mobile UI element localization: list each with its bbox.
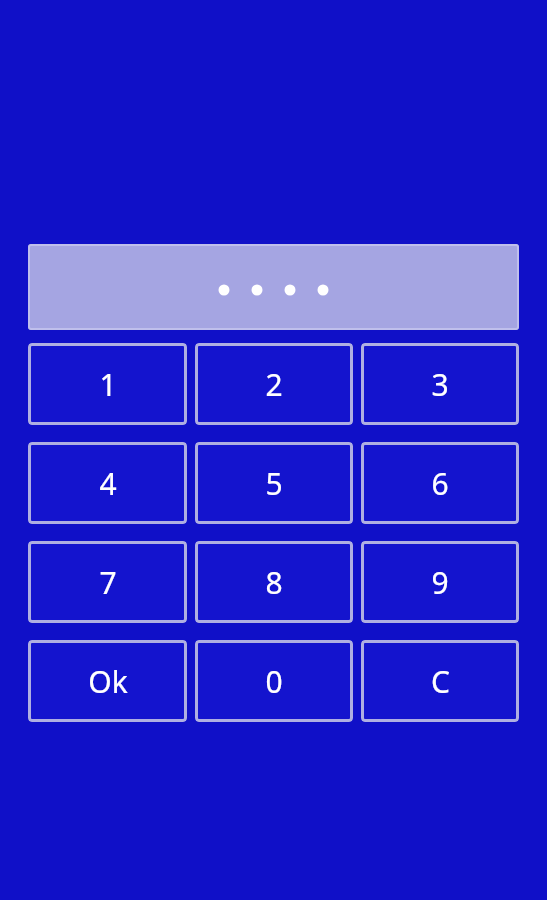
button[interactable]: 8	[195, 541, 353, 623]
staticText: C	[431, 661, 450, 702]
staticText: 0	[265, 661, 283, 702]
staticText: 3	[431, 364, 449, 405]
button[interactable]: Ok	[28, 640, 187, 722]
button[interactable]: 5	[195, 442, 353, 524]
button[interactable]: 9	[361, 541, 519, 623]
button[interactable]: 6	[361, 442, 519, 524]
button[interactable]: 0	[195, 640, 353, 722]
button[interactable]: 2	[195, 343, 353, 425]
staticText: 1	[99, 364, 117, 405]
staticText: Ok	[88, 661, 128, 702]
staticText: 9	[431, 562, 449, 603]
staticText: 4	[99, 463, 117, 504]
button[interactable]: C	[361, 640, 519, 722]
staticText: 7	[99, 562, 117, 603]
button[interactable]: 3	[361, 343, 519, 425]
button[interactable]: 7	[28, 541, 187, 623]
staticText: 5	[265, 463, 283, 504]
button[interactable]: 4	[28, 442, 187, 524]
staticText: 8	[265, 562, 283, 603]
staticText: 2	[265, 364, 283, 405]
button[interactable]: 1	[28, 343, 187, 425]
staticText: 6	[431, 463, 449, 504]
